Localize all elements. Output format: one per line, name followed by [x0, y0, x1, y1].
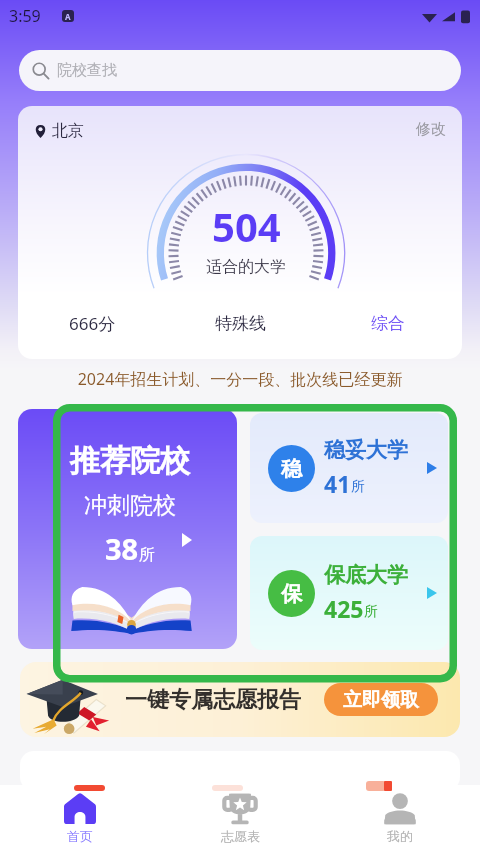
button[interactable]: 北京	[34, 121, 84, 141]
button[interactable]: 综合	[314, 313, 462, 334]
button[interactable]: 保	[250, 536, 448, 650]
staticText: 稳妥大学	[324, 437, 408, 463]
staticText: 首页	[67, 828, 93, 844]
button[interactable]: 推荐院校	[18, 409, 237, 649]
button[interactable]: 院校查找	[19, 50, 461, 91]
staticText: 冲刺院校	[84, 491, 176, 520]
button[interactable]: 立即领取	[324, 683, 438, 716]
button[interactable]: 稳	[250, 413, 448, 523]
staticText: 保	[281, 581, 302, 607]
staticText: A	[65, 11, 71, 22]
staticText: 院校查找	[57, 61, 117, 80]
staticText: 立即领取	[343, 688, 419, 712]
staticText: 38	[105, 529, 139, 568]
staticText: 综合	[371, 313, 405, 334]
staticText: 特殊线	[215, 313, 266, 334]
staticText: 666分	[69, 312, 116, 335]
staticText: 3:59	[9, 5, 41, 27]
staticText: 41	[324, 468, 351, 499]
button[interactable]: 修改	[416, 120, 446, 139]
button[interactable]: 我的	[320, 785, 480, 852]
staticText: 修改	[416, 120, 446, 139]
staticText: 适合的大学	[206, 257, 286, 277]
staticText: 北京	[52, 121, 84, 141]
staticText: 我的	[387, 828, 413, 844]
staticText: 504	[212, 199, 281, 253]
staticText: 所	[139, 545, 155, 565]
staticText: 425	[324, 593, 364, 624]
button[interactable]: 志愿表	[160, 785, 320, 852]
button[interactable]: 一键专属志愿报告	[20, 662, 460, 737]
button[interactable]: 首页	[0, 785, 160, 852]
staticText: 所	[364, 603, 378, 621]
staticText: 保底大学	[324, 562, 408, 588]
staticText: 稳	[281, 456, 302, 482]
staticText: 2024年招生计划、一分一段、批次线已经更新	[0, 368, 480, 390]
staticText: 推荐院校	[70, 442, 190, 480]
staticText: 一键专属志愿报告	[125, 686, 301, 714]
staticText: 志愿表	[221, 828, 260, 844]
staticText: 所	[351, 478, 365, 496]
